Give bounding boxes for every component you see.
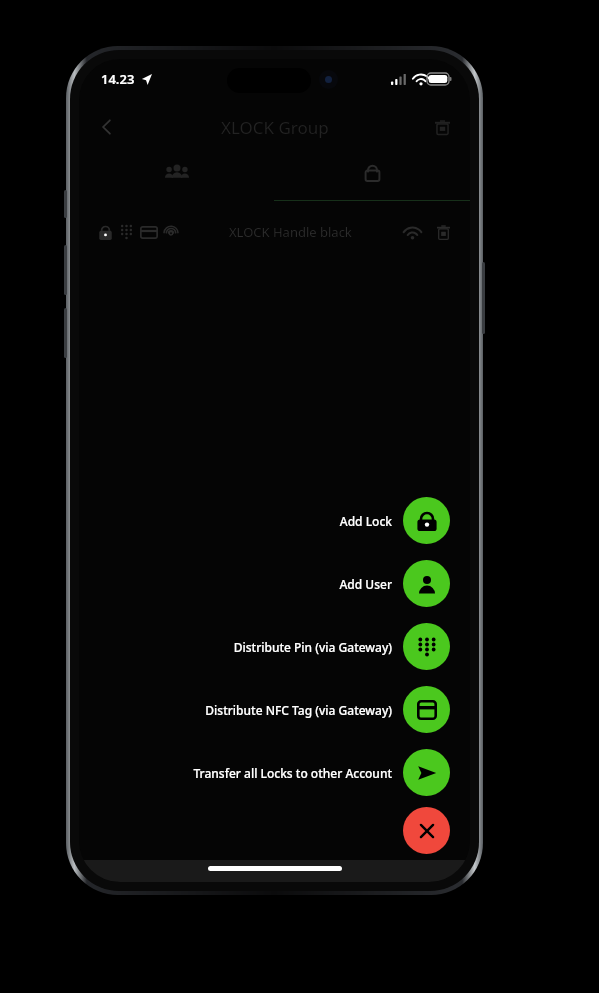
button[interactable]: Users tab bbox=[79, 151, 274, 201]
button[interactable]: Add User bbox=[339, 560, 450, 607]
button[interactable]: Close menu bbox=[403, 807, 450, 854]
button[interactable]: Delete group bbox=[424, 109, 460, 145]
button[interactable]: Locks tab bbox=[274, 151, 470, 201]
button[interactable]: XLOCK Handle black bbox=[79, 211, 470, 253]
staticText: Add Lock bbox=[339, 513, 392, 529]
button[interactable]: Back bbox=[87, 107, 127, 147]
button[interactable]: Distribute Pin (via Gateway) bbox=[233, 623, 450, 670]
staticText: Transfer all Locks to other Account bbox=[193, 765, 392, 781]
button[interactable]: Transfer all Locks to other Account bbox=[193, 749, 450, 796]
staticText: XLOCK Handle black bbox=[229, 223, 352, 241]
staticText: XLOCK Group bbox=[221, 116, 329, 139]
staticText: Distribute NFC Tag (via Gateway) bbox=[205, 702, 392, 718]
staticText: Distribute Pin (via Gateway) bbox=[233, 639, 392, 655]
staticText: 14.23 bbox=[101, 70, 135, 88]
staticText: Add User bbox=[339, 576, 392, 592]
button[interactable]: Distribute NFC Tag (via Gateway) bbox=[205, 686, 450, 733]
button[interactable]: Add Lock bbox=[339, 497, 450, 544]
